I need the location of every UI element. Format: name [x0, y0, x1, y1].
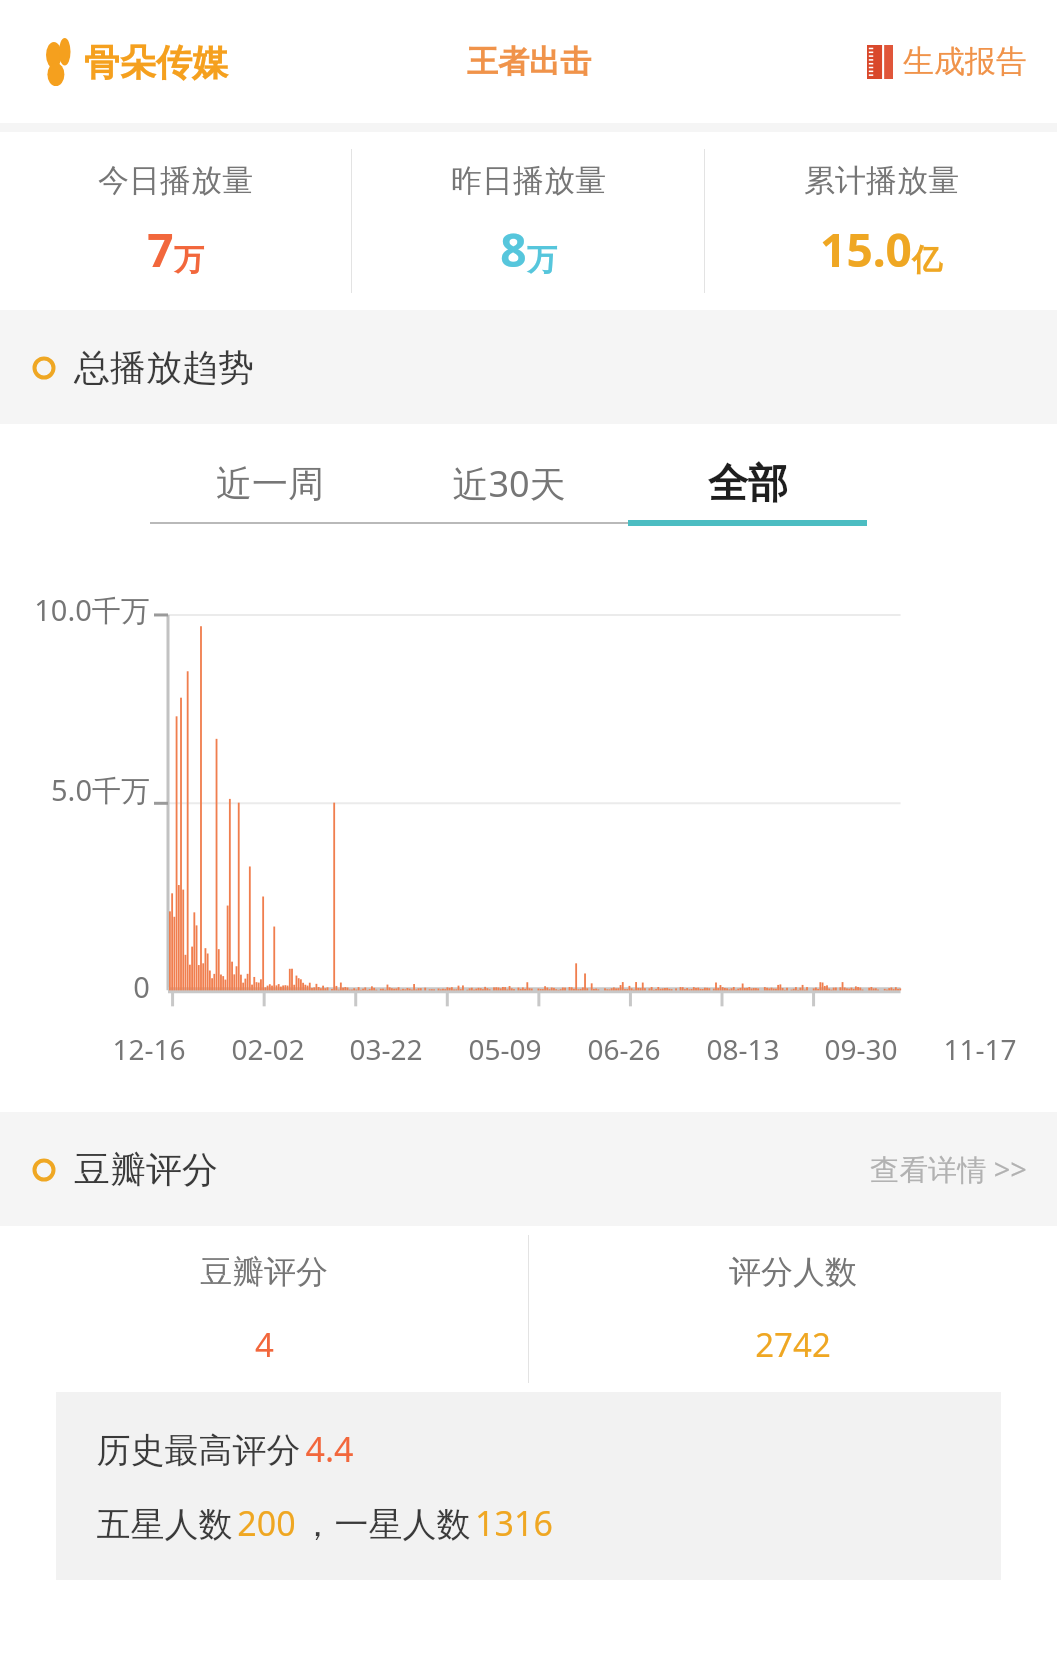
staticText: 09-30	[824, 1030, 898, 1068]
staticText: 2742	[755, 1322, 831, 1367]
staticText: 11-17	[943, 1030, 1017, 1068]
staticText: 王者出击	[467, 42, 591, 81]
staticText: 1316	[475, 1500, 553, 1546]
staticText: 骨朵传媒	[84, 40, 228, 85]
staticText: 4.4	[305, 1426, 354, 1472]
button[interactable]: 近一周	[150, 446, 389, 520]
staticText: 万	[174, 241, 204, 279]
staticText: 总播放趋势	[74, 345, 254, 390]
staticText: 7	[147, 218, 174, 281]
staticText: 查看详情 >>	[870, 1149, 1027, 1189]
staticText: 豆瓣评分	[200, 1252, 328, 1292]
staticText: 生成报告	[903, 42, 1027, 81]
staticText: 12-16	[112, 1030, 186, 1068]
staticText: 昨日播放量	[451, 161, 606, 200]
staticText: 200	[237, 1500, 296, 1546]
button[interactable]: 今日播放量	[0, 132, 351, 310]
button[interactable]: 累计播放量	[705, 132, 1057, 310]
button[interactable]: 豆瓣评分	[0, 1226, 528, 1392]
other: 总播放趋势柱状图	[0, 584, 1057, 1014]
staticText: 0	[133, 967, 150, 1006]
staticText: 4	[255, 1322, 274, 1367]
button[interactable]: 全部	[628, 446, 867, 520]
staticText: ，一星人数	[296, 1500, 475, 1546]
button[interactable]: 昨日播放量	[352, 132, 704, 310]
staticText: 亿	[912, 241, 942, 279]
staticText: 08-13	[706, 1030, 780, 1068]
staticText: 评分人数	[729, 1252, 857, 1292]
staticText: 全部	[708, 458, 788, 508]
staticText: 近30天	[452, 459, 566, 508]
staticText: 豆瓣评分	[74, 1147, 218, 1192]
staticText: 10.0千万	[34, 590, 150, 630]
staticText: 05-09	[468, 1030, 542, 1068]
staticText: 8	[500, 218, 527, 281]
button[interactable]: 近30天	[389, 446, 628, 520]
staticText: 今日播放量	[98, 161, 253, 200]
staticText: 5.0千万	[51, 770, 150, 810]
staticText: 02-02	[231, 1030, 305, 1068]
staticText: 06-26	[587, 1030, 661, 1068]
staticText: 累计播放量	[804, 161, 959, 200]
staticText: 五星人数	[92, 1500, 237, 1546]
button[interactable]: 评分人数	[529, 1226, 1057, 1392]
button[interactable]: 查看详情 >>	[870, 1149, 1027, 1189]
button[interactable]: 骨朵传媒	[44, 37, 228, 87]
staticText: 03-22	[349, 1030, 423, 1068]
other: 生成报告	[867, 45, 893, 79]
staticText: 历史最高评分	[92, 1426, 305, 1472]
staticText: 近一周	[216, 461, 324, 506]
button[interactable]: 生成报告	[867, 42, 1027, 81]
staticText: 万	[527, 241, 557, 279]
staticText: 15.0	[820, 218, 912, 281]
